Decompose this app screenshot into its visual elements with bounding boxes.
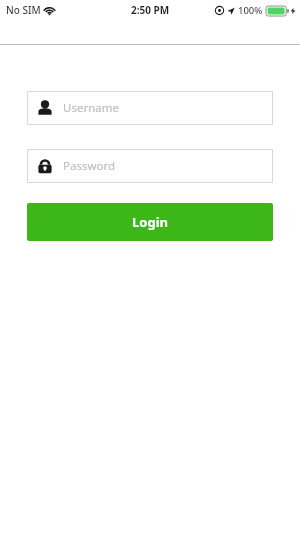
button[interactable]: Password <box>27 149 273 183</box>
staticText: Username <box>63 100 119 116</box>
staticText: 2:50 PM <box>131 3 170 17</box>
other: Username <box>35 98 55 118</box>
staticText: No SIM <box>6 3 41 17</box>
button[interactable]: Username <box>27 91 273 125</box>
other: Password <box>35 156 55 176</box>
button[interactable]: Login <box>27 203 273 241</box>
staticText: 100% <box>238 4 263 17</box>
staticText: Login <box>132 213 168 231</box>
staticText: Password <box>63 158 116 174</box>
